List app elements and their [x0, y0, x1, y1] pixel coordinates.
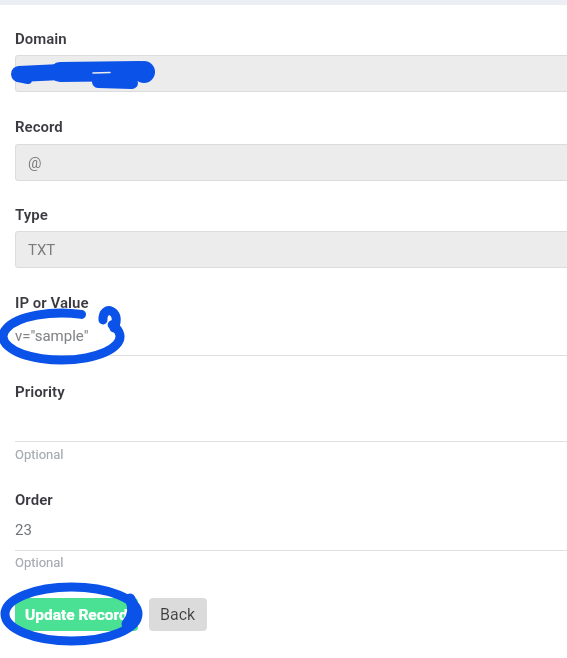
staticText: IP or Value [15, 294, 89, 312]
staticText: Update Record [25, 606, 128, 624]
staticText: Record [15, 118, 63, 136]
button[interactable]: @ [15, 144, 567, 181]
staticText: Domain [15, 30, 67, 48]
button[interactable] [15, 515, 567, 551]
staticText: v="sample" [15, 327, 89, 345]
staticText: Priority [15, 383, 65, 401]
button[interactable]: Update Record [15, 598, 138, 631]
button[interactable]: TXT [15, 231, 567, 268]
staticText: Order [15, 491, 53, 509]
staticText: Back [160, 605, 196, 624]
staticText: @ [28, 154, 42, 172]
staticText: Optional [15, 555, 64, 570]
staticText: Optional [15, 447, 64, 462]
button[interactable] [15, 320, 567, 356]
staticText: TXT [28, 241, 56, 259]
button[interactable] [15, 406, 567, 442]
staticText: Type [15, 206, 48, 224]
button[interactable]: Back [149, 598, 207, 631]
button[interactable] [15, 55, 567, 92]
staticText: 23 [15, 521, 32, 539]
